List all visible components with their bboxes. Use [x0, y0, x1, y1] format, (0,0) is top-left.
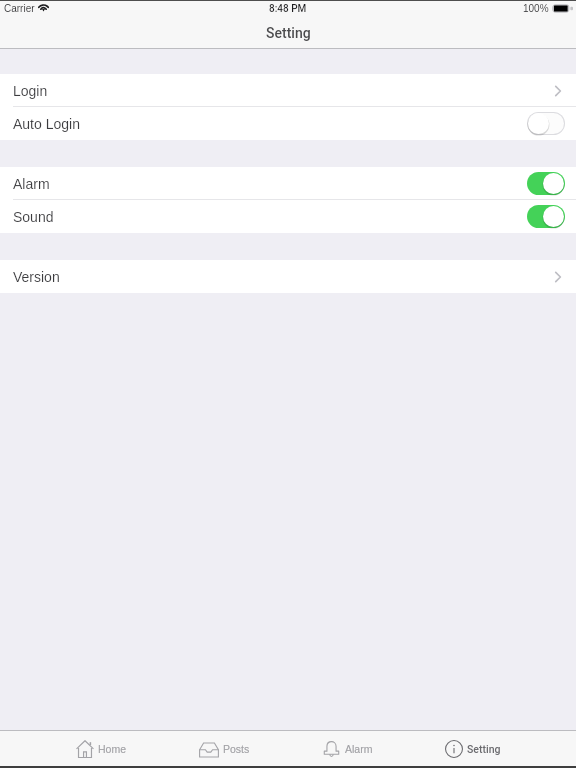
staticText: 100%: [523, 3, 549, 14]
button[interactable]: Login: [0, 74, 576, 107]
button[interactable]: Open: [551, 80, 565, 102]
staticText: Carrier: [4, 3, 35, 14]
button[interactable]: Posts: [187, 731, 262, 766]
button[interactable]: Open: [551, 266, 565, 288]
button[interactable]: Sound: [0, 200, 576, 233]
button[interactable]: Version: [0, 260, 576, 293]
staticText: Sound: [13, 209, 54, 225]
staticText: Version: [13, 269, 60, 285]
button[interactable]: Home: [64, 731, 139, 766]
button[interactable]: Auto Login: [0, 107, 576, 140]
staticText: Setting: [266, 25, 311, 41]
button[interactable]: Sound toggle: [527, 205, 565, 228]
staticText: Home: [98, 743, 127, 755]
staticText: Auto Login: [13, 116, 80, 132]
button[interactable]: Alarm toggle: [527, 172, 565, 195]
button[interactable]: Auto Login toggle: [527, 112, 565, 135]
button[interactable]: Setting: [433, 731, 513, 766]
staticText: Login: [13, 83, 48, 99]
staticText: Alarm: [13, 176, 50, 192]
button[interactable]: Alarm: [310, 731, 385, 766]
staticText: Setting: [467, 743, 501, 755]
button[interactable]: Alarm: [0, 167, 576, 200]
staticText: Posts: [223, 743, 250, 755]
staticText: 8:48 PM: [269, 3, 307, 15]
staticText: Alarm: [345, 743, 373, 755]
